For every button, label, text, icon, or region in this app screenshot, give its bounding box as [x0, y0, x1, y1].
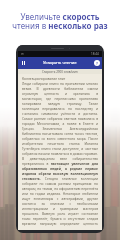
- staticText: Скорость 2900 слов/мин: [42, 70, 78, 74]
- staticText: Коллекционирование книг Люди собирали кн…: [22, 76, 98, 228]
- staticText: ✉: [21, 52, 24, 56]
- staticText: Увеличьте скорость чтения в несколько ра…: [12, 11, 108, 32]
- button[interactable]: Pause: [18, 57, 29, 69]
- staticText: ?: [96, 61, 98, 66]
- button[interactable]: Help: [91, 57, 102, 69]
- staticText: Ускорить чтение: [43, 60, 77, 66]
- staticText: 18:44: [91, 52, 99, 56]
